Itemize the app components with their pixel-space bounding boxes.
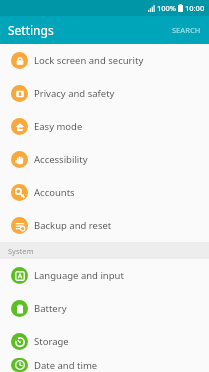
button[interactable]: Accessibility [0,143,209,176]
staticText: Backup and reset [34,219,112,232]
staticText: System [8,246,34,256]
button[interactable]: Accounts [0,176,209,209]
staticText: Battery [34,302,67,315]
button[interactable]: Privacy and safety [0,77,209,110]
staticText: 100% [157,3,177,13]
button[interactable]: Storage [0,325,209,358]
staticText: Accessibility [34,153,88,166]
button[interactable]: Battery [0,292,209,325]
staticText: 10:00 [185,3,205,13]
staticText: Lock screen and security [34,54,144,67]
button[interactable]: Backup and reset [0,209,209,242]
button[interactable]: Lock screen and security [0,44,209,77]
staticText: Storage [34,335,69,348]
button[interactable]: SEARCH [164,18,209,42]
staticText: Accounts [34,186,75,199]
staticText: Date and time [34,359,98,372]
staticText: Settings [8,22,54,38]
staticText: Privacy and safety [34,87,115,100]
staticText: Language and input [34,269,124,282]
button[interactable]: Language and input [0,259,209,292]
button[interactable]: Easy mode [0,110,209,143]
staticText: SEARCH [172,25,201,35]
button[interactable]: Date and time [0,358,209,372]
staticText: Easy mode [34,120,83,133]
